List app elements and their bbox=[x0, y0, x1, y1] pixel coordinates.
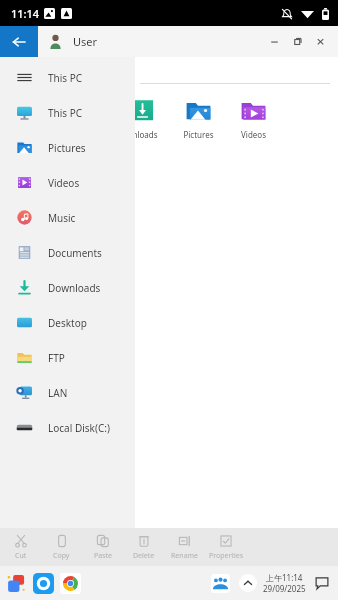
button[interactable]: Pictures bbox=[0, 130, 135, 165]
button[interactable]: 上午11:14 bbox=[263, 572, 306, 594]
staticText: User bbox=[73, 34, 98, 49]
staticText: nloads bbox=[132, 129, 158, 140]
button[interactable]: Documents bbox=[0, 235, 135, 270]
staticText: Rename bbox=[171, 551, 199, 561]
button[interactable]: Show hidden icons bbox=[238, 573, 258, 593]
staticText: Downloads bbox=[48, 281, 101, 295]
button[interactable]: Minimize bbox=[263, 26, 286, 57]
button[interactable]: LAN bbox=[0, 375, 135, 410]
button[interactable]: Downloads bbox=[0, 270, 135, 305]
button[interactable]: Chrome bbox=[58, 571, 82, 595]
staticText: This PC bbox=[48, 106, 83, 120]
staticText: Documents bbox=[48, 246, 102, 260]
staticText: Properties bbox=[209, 551, 243, 561]
staticText: FTP bbox=[48, 351, 65, 365]
button[interactable]: This PC bbox=[0, 60, 135, 95]
button[interactable]: Rename bbox=[164, 528, 205, 566]
staticText: 11:14 bbox=[11, 6, 40, 21]
staticText: Delete bbox=[133, 551, 155, 561]
staticText: Pictures bbox=[183, 129, 214, 140]
button[interactable]: Restore bbox=[286, 26, 309, 57]
staticText: LAN bbox=[48, 386, 68, 400]
staticText: 29/09/2025 bbox=[263, 583, 306, 594]
staticText: Cut bbox=[15, 551, 27, 561]
staticText: Copy bbox=[53, 551, 70, 561]
button[interactable]: Paste bbox=[82, 528, 123, 566]
button[interactable]: Music bbox=[0, 200, 135, 235]
button[interactable]: Back bbox=[0, 26, 38, 57]
staticText: 上午11:14 bbox=[266, 572, 303, 583]
staticText: Desktop bbox=[48, 316, 87, 330]
button[interactable]: Close bbox=[309, 26, 332, 57]
button[interactable]: Notifications bbox=[312, 573, 332, 593]
button[interactable]: FTP bbox=[0, 340, 135, 375]
staticText: Music bbox=[48, 211, 76, 225]
staticText: This PC bbox=[48, 71, 83, 85]
button[interactable]: Desktop bbox=[0, 305, 135, 340]
staticText: Local Disk(C:) bbox=[48, 421, 110, 435]
button[interactable]: nloads bbox=[120, 97, 170, 140]
button[interactable]: Properties bbox=[205, 528, 246, 566]
button[interactable]: Delete bbox=[123, 528, 164, 566]
staticText: Videos bbox=[241, 129, 266, 140]
button[interactable]: Videos bbox=[226, 97, 280, 140]
staticText: Pictures bbox=[48, 141, 86, 155]
button[interactable]: Copy bbox=[41, 528, 82, 566]
button[interactable]: Photos app bbox=[4, 571, 28, 595]
button[interactable]: Videos bbox=[0, 165, 135, 200]
staticText: Paste bbox=[94, 551, 112, 561]
button[interactable]: Media app bbox=[31, 571, 55, 595]
button[interactable]: This PC bbox=[0, 95, 135, 130]
button[interactable]: People bbox=[209, 572, 231, 594]
button[interactable]: Pictures bbox=[170, 97, 226, 140]
staticText: Videos bbox=[48, 176, 80, 190]
button[interactable]: Cut bbox=[0, 528, 41, 566]
button[interactable]: Local Disk(C:) bbox=[0, 410, 135, 445]
